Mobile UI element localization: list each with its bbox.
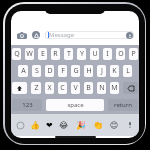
staticText: F [61, 66, 65, 76]
button[interactable]: Audio message [126, 32, 133, 39]
staticText: G [73, 66, 79, 76]
button[interactable]: Dictation [126, 121, 134, 129]
staticText: D [47, 66, 53, 76]
button[interactable]: Z [31, 82, 41, 94]
staticText: 👏 [93, 121, 103, 130]
staticText: Y [80, 49, 84, 59]
staticText: R [53, 49, 58, 59]
staticText: T [67, 49, 71, 59]
button[interactable]: Emoji [16, 121, 24, 129]
staticText: U [92, 49, 98, 59]
staticText: J [101, 66, 103, 76]
button[interactable]: H [84, 65, 93, 77]
button[interactable]: Y [77, 48, 86, 60]
staticText: A [21, 66, 26, 76]
staticText: Q [14, 49, 20, 59]
button[interactable]: G [71, 65, 80, 77]
staticText: 123 [22, 101, 33, 109]
button[interactable]: T [64, 48, 73, 60]
button[interactable]: 123 [12, 99, 42, 111]
staticText: Z [34, 83, 39, 93]
staticText: H [86, 66, 92, 76]
button[interactable]: P [129, 48, 138, 60]
staticText: S [35, 66, 39, 76]
button[interactable]: Message [45, 31, 134, 39]
staticText: P [131, 49, 136, 59]
button[interactable]: K [110, 65, 119, 77]
staticText: N [99, 83, 105, 93]
staticText: 👍 [30, 121, 40, 130]
staticText: V [73, 83, 78, 93]
button[interactable]: space [46, 99, 104, 111]
button[interactable]: Backspace [123, 82, 138, 94]
button[interactable]: Shift [12, 82, 27, 94]
button[interactable]: D [45, 65, 54, 77]
staticText: I [106, 49, 109, 59]
button[interactable]: R [51, 48, 60, 60]
button[interactable]: Camera [17, 31, 27, 40]
button[interactable]: A [18, 65, 28, 77]
button[interactable]: V [71, 82, 80, 94]
button[interactable]: W [25, 48, 34, 60]
staticText: W [26, 49, 33, 59]
staticText: return [114, 101, 132, 109]
staticText: ❤️ [46, 121, 53, 130]
staticText: K [112, 66, 117, 76]
staticText: 🎉 [76, 121, 86, 130]
staticText: 😂 [59, 121, 69, 130]
staticText: C [60, 83, 65, 93]
button[interactable]: Q [12, 48, 21, 60]
button[interactable]: F [58, 65, 67, 77]
button[interactable]: I [103, 48, 112, 60]
button[interactable]: M [110, 82, 119, 94]
staticText: B [86, 83, 91, 93]
button[interactable]: L [123, 65, 132, 77]
staticText: L [126, 66, 130, 76]
button[interactable]: B [84, 82, 93, 94]
button[interactable]: N [97, 82, 106, 94]
button[interactable]: E [38, 48, 47, 60]
button[interactable]: J [97, 65, 106, 77]
staticText: M [111, 83, 118, 93]
staticText: space [67, 101, 84, 109]
button[interactable]: O [116, 48, 125, 60]
staticText: E [41, 49, 45, 59]
button[interactable]: X [45, 82, 54, 94]
staticText: O [118, 49, 124, 59]
staticText: X [47, 83, 52, 93]
button[interactable]: App Store [31, 30, 41, 40]
button[interactable]: U [90, 48, 99, 60]
button[interactable]: return [108, 99, 138, 111]
button[interactable]: C [58, 82, 67, 94]
staticText: 😊 [110, 121, 119, 130]
staticText: Message [49, 31, 75, 39]
button[interactable]: S [32, 65, 41, 77]
